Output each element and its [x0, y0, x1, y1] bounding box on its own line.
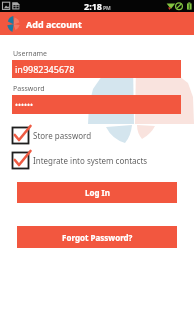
- button[interactable]: in9982345678: [12, 60, 181, 78]
- staticText: Forgot Password?: [62, 232, 133, 243]
- staticText: ••••••: [15, 99, 34, 110]
- staticText: Log In: [85, 187, 110, 198]
- staticText: Store password: [33, 130, 92, 141]
- button[interactable]: ••••••: [12, 95, 181, 114]
- other: App logo: [5, 16, 21, 32]
- staticText: Password: [13, 84, 45, 94]
- button[interactable]: Forgot Password?: [17, 226, 177, 248]
- staticText: in9982345678: [15, 63, 75, 75]
- button[interactable]: Log In: [17, 182, 177, 203]
- button[interactable]: Integrate into system contacts: [11, 150, 194, 170]
- staticText: PM: [103, 5, 111, 12]
- staticText: Integrate into system contacts: [33, 155, 148, 166]
- staticText: Add account: [26, 18, 82, 30]
- button[interactable]: Store password: [11, 125, 194, 145]
- staticText: 2:18: [84, 0, 102, 12]
- staticText: Username: [13, 49, 48, 59]
